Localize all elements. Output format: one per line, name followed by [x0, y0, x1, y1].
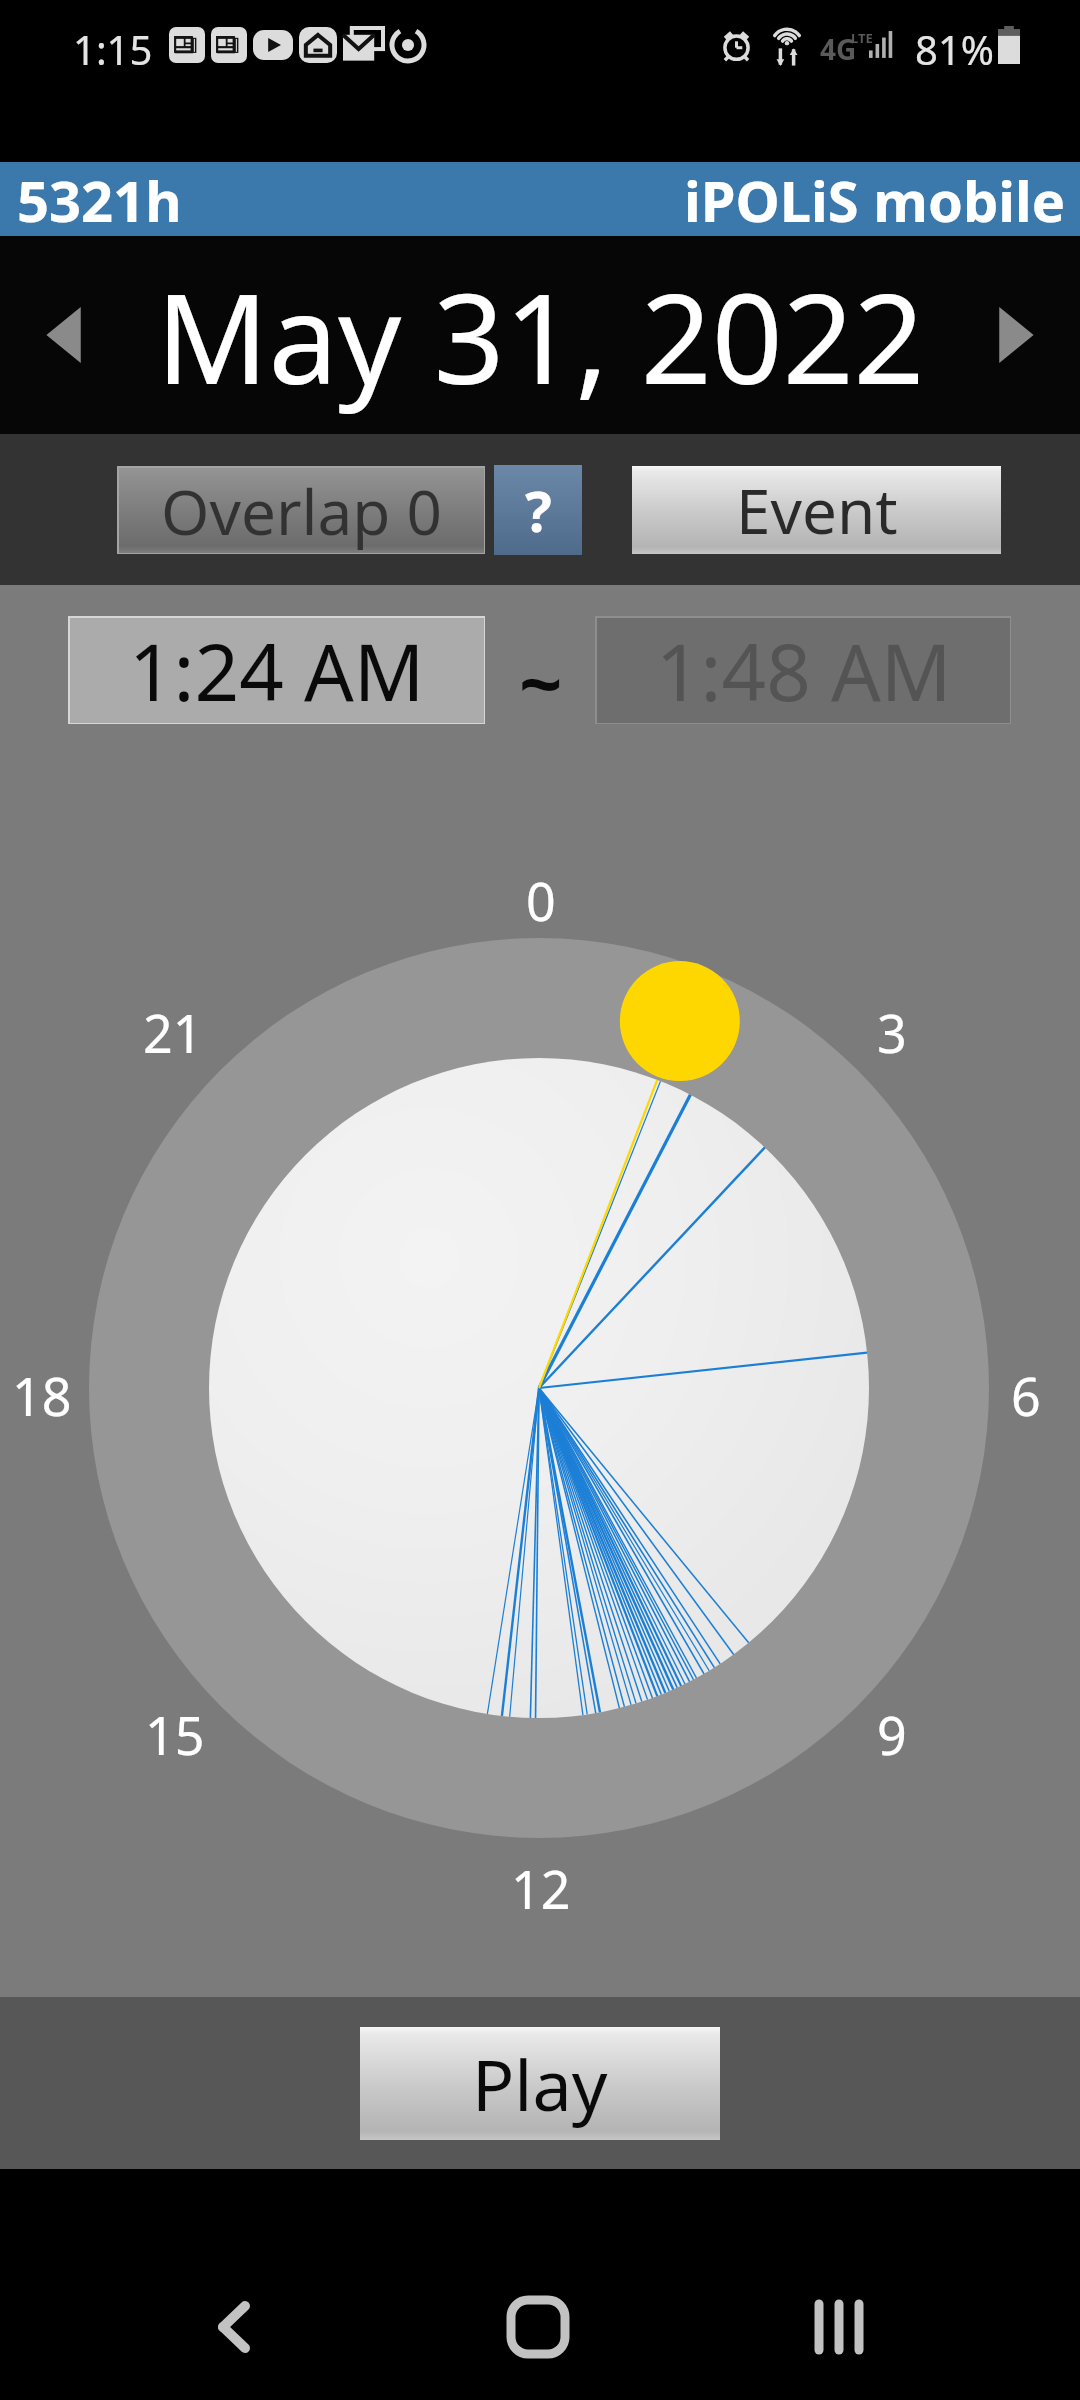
button[interactable]: Help: [494, 465, 582, 555]
staticText: 4G: [820, 30, 857, 68]
button[interactable]: 1:48 AM: [597, 618, 1010, 723]
staticText: Overlap 0: [161, 469, 442, 553]
button[interactable]: Play: [360, 2027, 720, 2140]
staticText: 0: [526, 865, 556, 936]
staticText: 3: [877, 997, 907, 1068]
staticText: LTE: [851, 29, 873, 47]
staticText: 1:15: [73, 22, 153, 68]
staticText: iPOLiS mobile: [684, 162, 1066, 236]
button[interactable]: Home: [468, 2257, 608, 2397]
staticText: 18: [12, 1360, 72, 1431]
staticText: 1:24 AM: [129, 618, 425, 723]
button[interactable]: Recents: [769, 2257, 909, 2397]
button[interactable]: Previous day: [0, 236, 128, 434]
staticText: Play: [472, 2036, 608, 2131]
staticText: Event: [736, 468, 898, 552]
button[interactable]: Overlap 0: [119, 468, 484, 553]
button[interactable]: Back: [164, 2257, 304, 2397]
staticText: 12: [511, 1853, 571, 1924]
button[interactable]: Event: [632, 466, 1001, 554]
button[interactable]: Next day: [952, 236, 1080, 434]
button[interactable]: 1:24 AM: [70, 618, 484, 723]
staticText: 9: [877, 1699, 907, 1770]
staticText: 1:48 AM: [656, 618, 952, 723]
staticText: ?: [525, 472, 552, 548]
staticText: ~: [519, 630, 563, 734]
staticText: 15: [145, 1699, 205, 1770]
staticText: 6: [1011, 1360, 1041, 1431]
staticText: 81%: [915, 22, 994, 68]
staticText: May 31, 2022: [156, 251, 925, 420]
staticText: 21: [143, 997, 203, 1068]
staticText: 5321h: [17, 162, 182, 236]
